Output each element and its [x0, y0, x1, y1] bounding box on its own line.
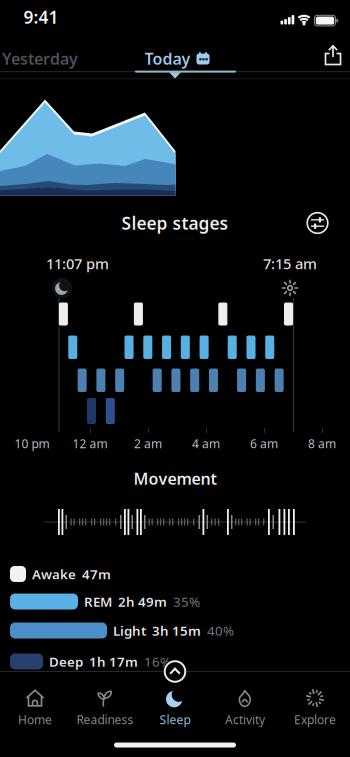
button[interactable]: Readiness: [70, 684, 140, 728]
button[interactable]: Yesterday: [2, 48, 78, 69]
staticText: 1h 17m: [89, 653, 138, 670]
staticText: Light: [113, 622, 146, 639]
staticText: 10 pm: [14, 435, 49, 451]
staticText: 6 am: [250, 435, 278, 451]
staticText: Sleep: [159, 711, 190, 727]
staticText: Awake: [32, 565, 76, 583]
button[interactable]: Explore: [280, 684, 350, 728]
staticText: Sleep stages: [121, 211, 228, 234]
button[interactable]: [163, 659, 187, 683]
button[interactable]: Activity: [210, 684, 280, 728]
staticText: Deep: [49, 653, 83, 670]
staticText: 35%: [173, 593, 200, 610]
staticText: Today: [144, 48, 190, 69]
staticText: 9:41: [23, 5, 58, 28]
staticText: 4 am: [192, 435, 220, 451]
staticText: 7:15 am: [263, 254, 317, 273]
staticText: 3h 15m: [152, 622, 201, 639]
staticText: REM: [84, 593, 112, 610]
staticText: Home: [18, 711, 52, 727]
staticText: Movement: [133, 468, 216, 489]
button[interactable]: Sleep: [140, 684, 210, 728]
staticText: 8 am: [308, 435, 336, 451]
staticText: 47m: [82, 565, 111, 583]
staticText: 11:07 pm: [46, 254, 109, 273]
button[interactable]: [322, 44, 344, 70]
staticText: 16%: [144, 653, 171, 670]
button[interactable]: Today: [144, 48, 209, 69]
staticText: Readiness: [76, 711, 133, 727]
button[interactable]: [304, 210, 330, 236]
staticText: Activity: [225, 711, 265, 727]
staticText: 2h 49m: [118, 593, 167, 610]
staticText: 40%: [207, 622, 234, 639]
staticText: 12 am: [72, 435, 107, 451]
staticText: Explore: [294, 711, 336, 727]
button[interactable]: Home: [0, 684, 70, 728]
staticText: 2 am: [134, 435, 162, 451]
staticText: Yesterday: [2, 48, 78, 69]
